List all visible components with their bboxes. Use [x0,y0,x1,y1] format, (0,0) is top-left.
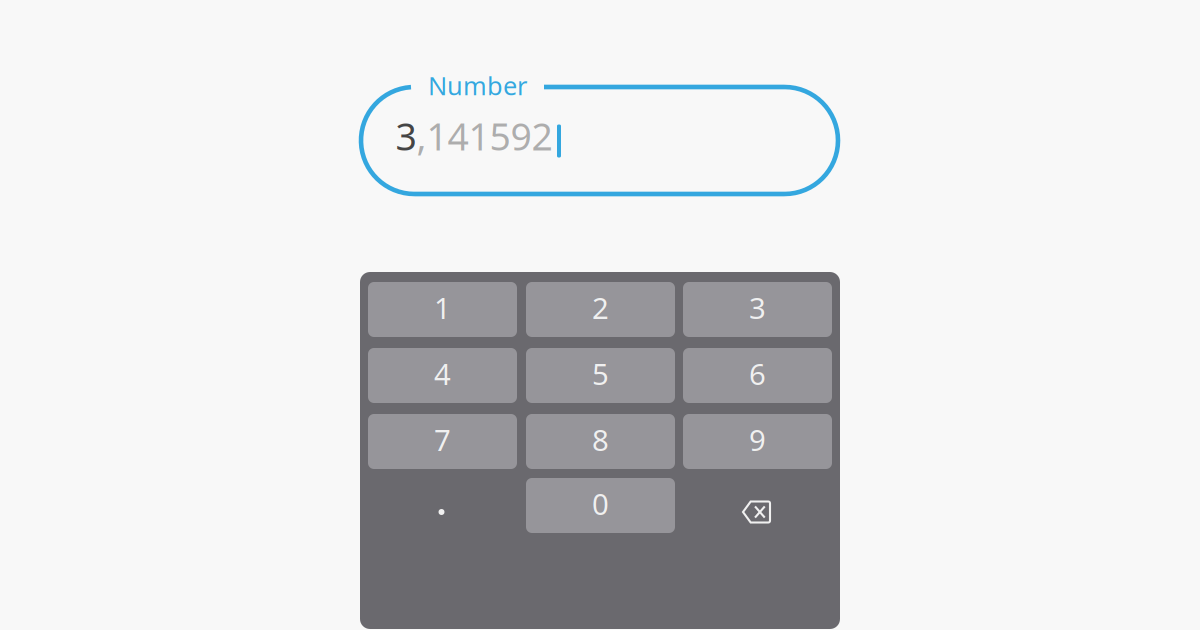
staticText: 7 [434,420,451,459]
staticText: 0 [592,484,609,523]
button[interactable]: 4 [368,348,517,403]
button[interactable]: 8 [526,414,675,469]
staticText: 6 [749,354,766,393]
button[interactable]: 1 [368,282,517,337]
staticText: ,141592 [416,111,552,161]
button[interactable]: 7 [368,414,517,469]
staticText: 4 [434,354,451,393]
staticText: 3 [749,288,766,327]
button[interactable]: 2 [526,282,675,337]
staticText: 5 [592,354,609,393]
staticText: 1 [434,288,451,327]
button[interactable]: 9 [683,414,832,469]
staticText: 8 [592,420,609,459]
button[interactable]: 3 [683,282,832,337]
staticText: 9 [749,420,766,459]
button[interactable]: 0 [526,478,675,533]
staticText: Number [428,69,527,102]
button[interactable]: Decimal point [367,484,516,539]
button[interactable]: 5 [526,348,675,403]
staticText: 2 [592,288,609,327]
button[interactable]: Delete [682,484,831,539]
staticText: 3 [395,111,416,161]
button[interactable]: 6 [683,348,832,403]
button[interactable]: Number [361,87,838,194]
